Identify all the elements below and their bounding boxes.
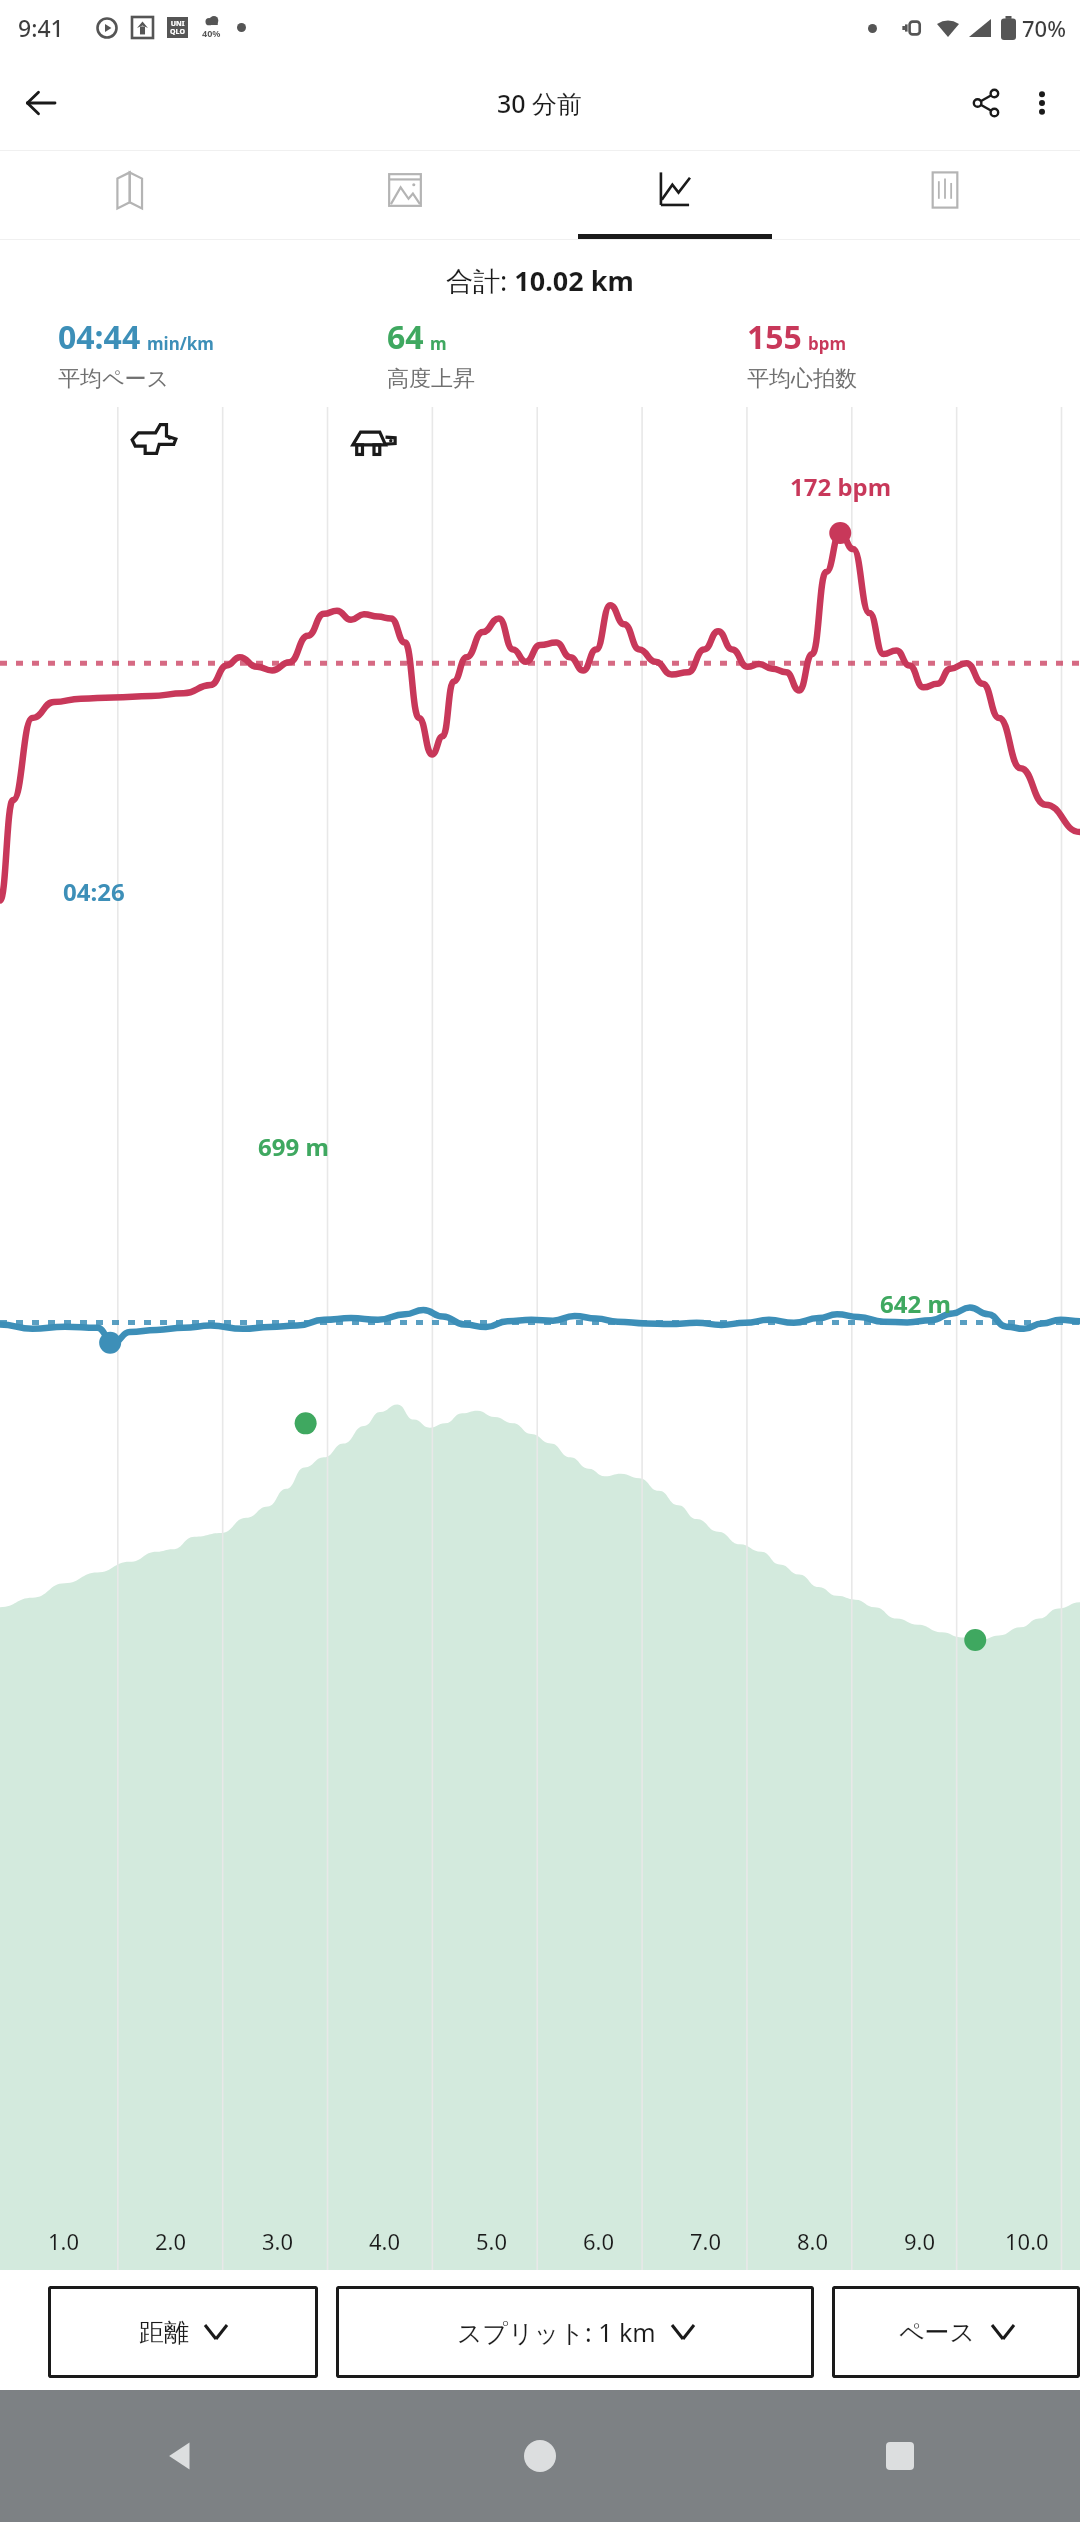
button[interactable]: Home — [360, 2390, 720, 2522]
staticText: 3.0 — [262, 2226, 294, 2256]
button[interactable]: ペース — [832, 2286, 1080, 2378]
button[interactable]: Map route — [0, 151, 270, 239]
staticText: 8.0 — [797, 2226, 829, 2256]
staticText: 04:44 — [58, 315, 141, 359]
staticText: 10.0 — [1005, 2226, 1049, 2256]
staticText: 合計: 10.02 km — [446, 262, 634, 299]
button[interactable]: Share — [958, 75, 1014, 131]
staticText: 5.0 — [476, 2226, 508, 2256]
staticText: min/km — [147, 332, 214, 355]
staticText: 7.0 — [690, 2226, 722, 2256]
button[interactable]: Back — [0, 2390, 360, 2522]
button[interactable]: Back — [12, 75, 68, 131]
button[interactable]: 距離 — [48, 2286, 318, 2378]
staticText: 平均心拍数 — [747, 365, 857, 393]
staticText: 155 — [747, 315, 802, 359]
button[interactable]: Charts — [540, 151, 810, 239]
staticText: ペース — [899, 2317, 976, 2348]
staticText: 172 bpm — [790, 470, 892, 503]
staticText: 2.0 — [155, 2226, 187, 2256]
staticText: 1.0 — [48, 2226, 80, 2256]
staticText: 699 m — [258, 1130, 329, 1163]
staticText: 30 分前 — [497, 86, 583, 120]
staticText: 40% — [202, 27, 221, 39]
staticText: UNI QLO — [170, 19, 185, 36]
staticText: 9:41 — [18, 12, 64, 43]
button[interactable]: Recent apps — [720, 2390, 1080, 2522]
button[interactable]: Splits — [810, 151, 1080, 239]
staticText: 642 m — [880, 1287, 951, 1320]
staticText: 04:26 — [63, 875, 125, 908]
staticText: 高度上昇 — [387, 365, 475, 393]
staticText: 距離 — [139, 2317, 189, 2348]
staticText: 9.0 — [904, 2226, 936, 2256]
button[interactable]: Photos — [270, 151, 540, 239]
staticText: bpm — [808, 332, 847, 355]
button[interactable]: スプリット: 1 km — [336, 2286, 814, 2378]
staticText: 6.0 — [583, 2226, 615, 2256]
staticText: スプリット: 1 km — [457, 2315, 656, 2349]
staticText: 64 — [387, 315, 424, 359]
staticText: 70% — [1022, 13, 1066, 43]
staticText: 平均ペース — [58, 365, 170, 393]
staticText: 4.0 — [369, 2226, 401, 2256]
button[interactable]: More options — [1014, 75, 1070, 131]
staticText: m — [430, 332, 447, 355]
